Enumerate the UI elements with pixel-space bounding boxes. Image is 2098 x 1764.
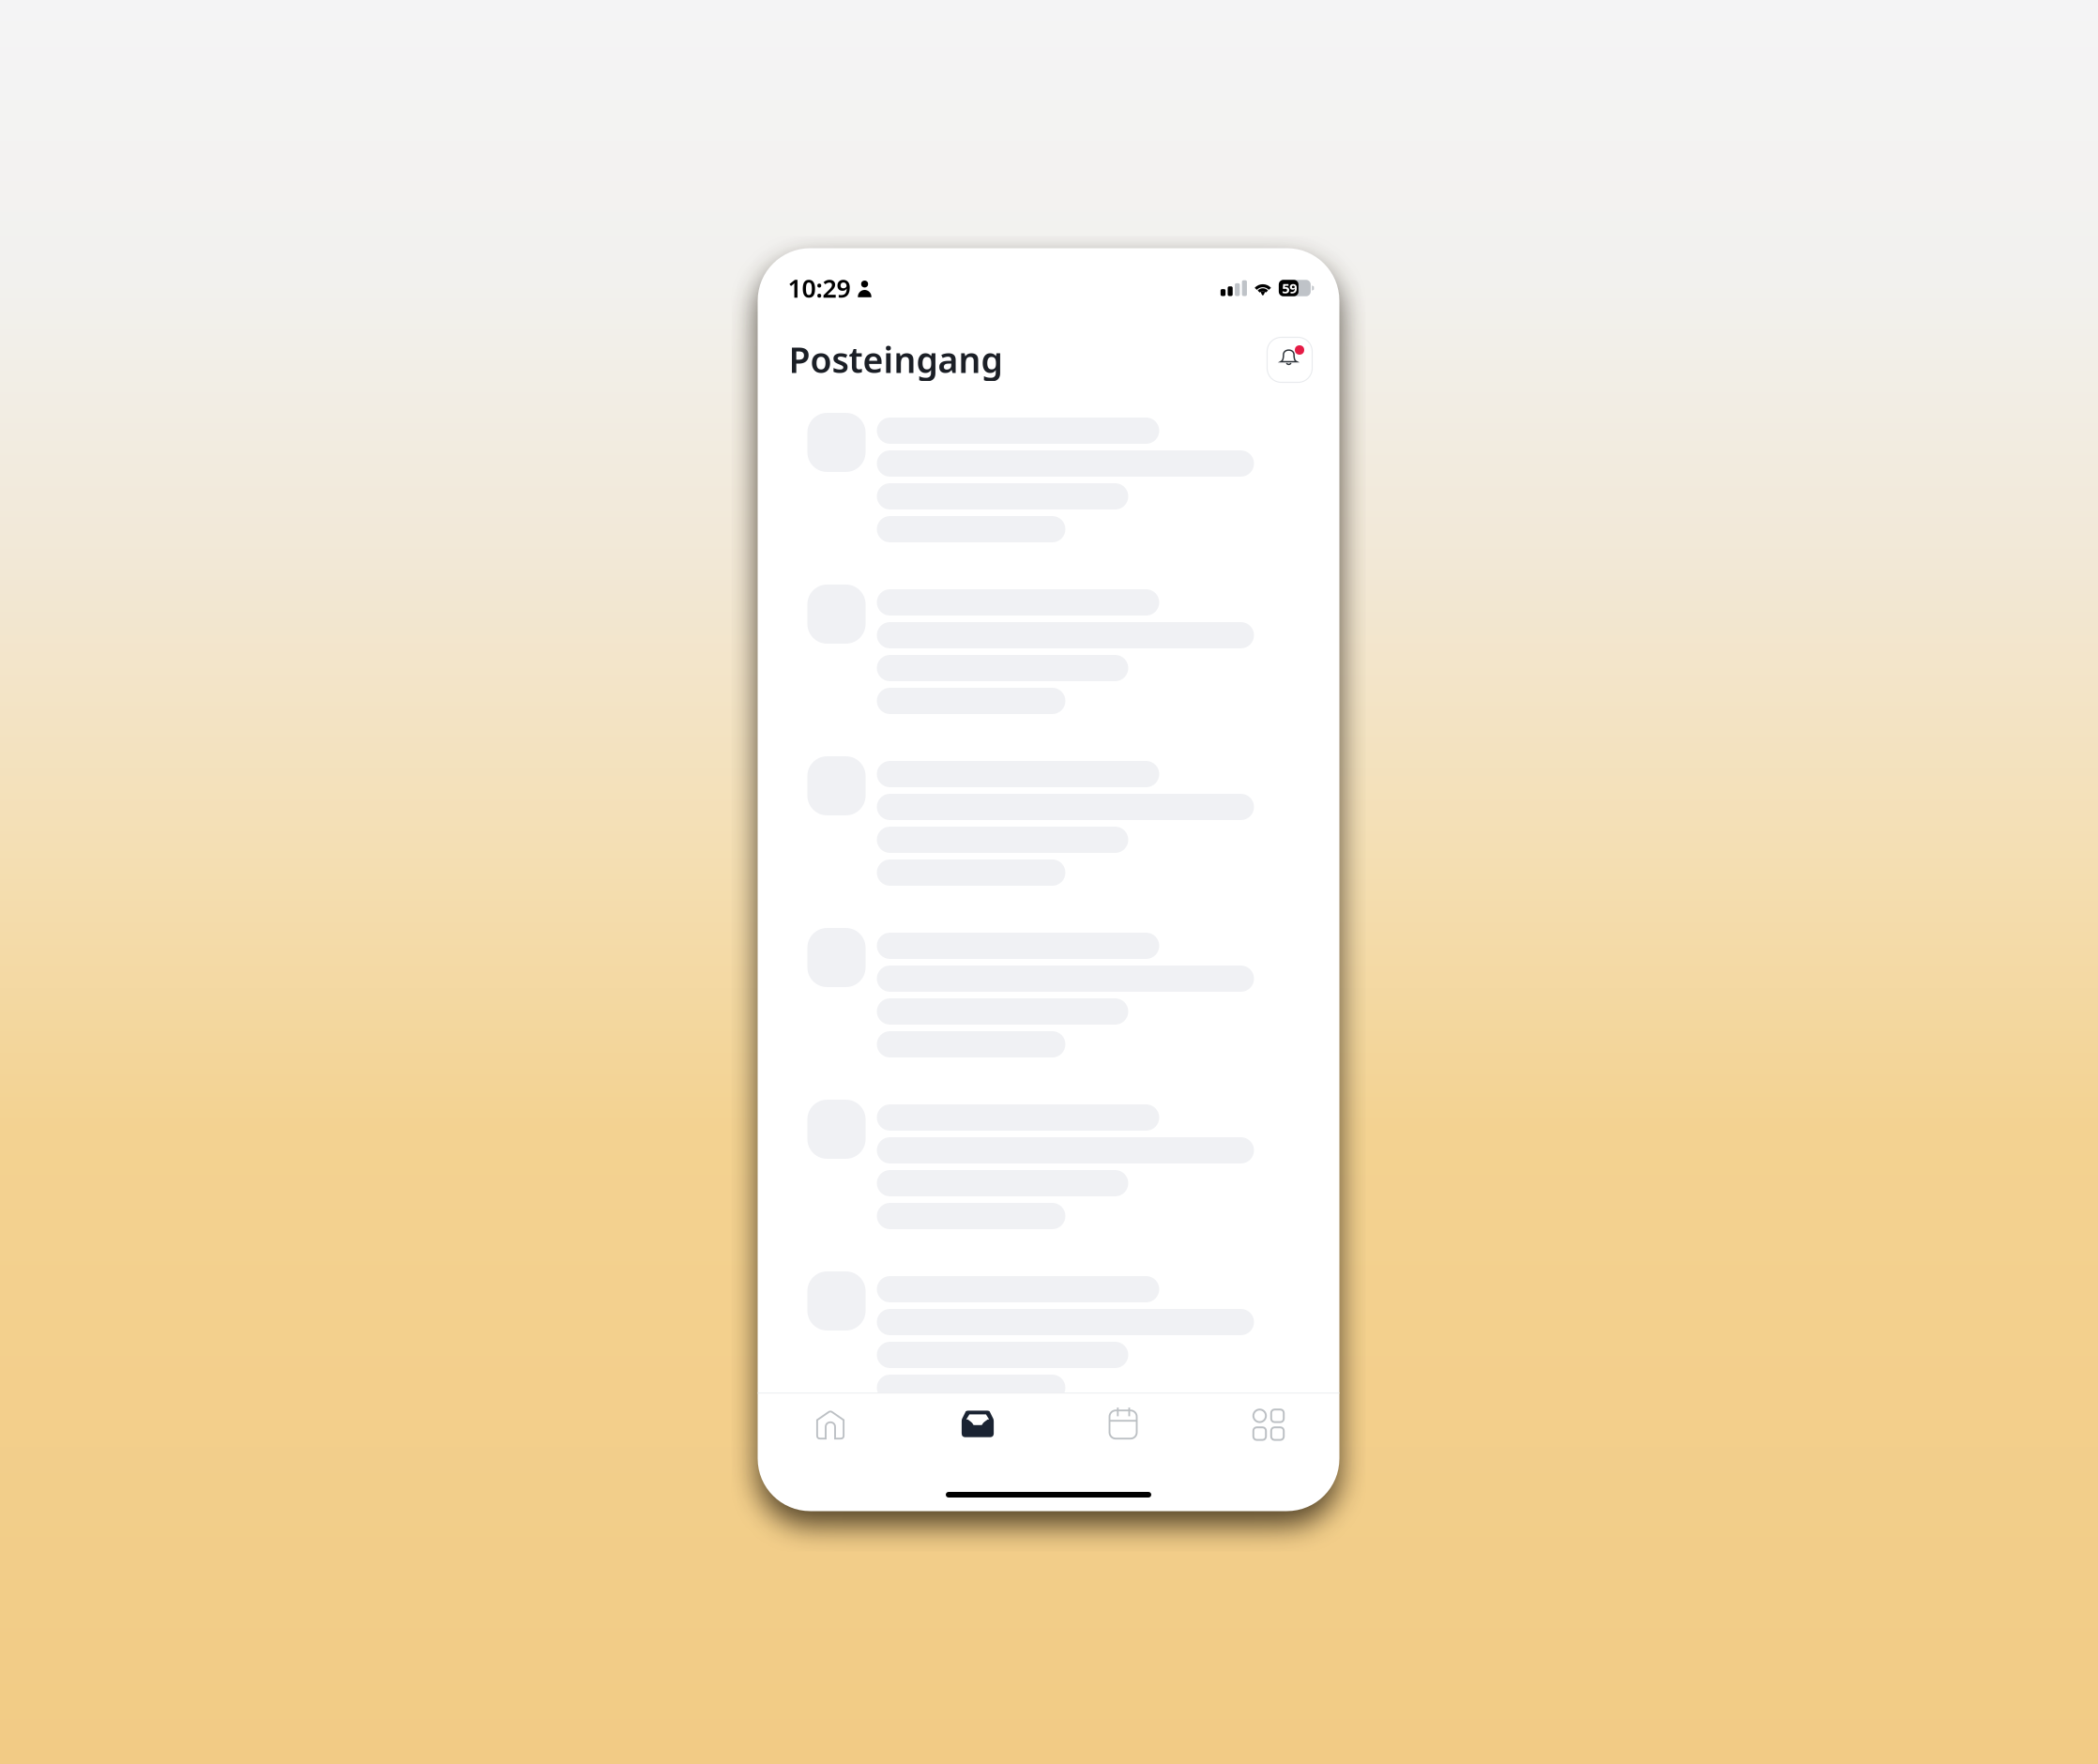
button[interactable]: Inbox bbox=[903, 1410, 1049, 1464]
staticText: Posteingang bbox=[789, 336, 1003, 383]
button[interactable]: Home bbox=[758, 1410, 903, 1464]
staticText: 10:29 bbox=[788, 271, 851, 305]
button[interactable]: Calendar bbox=[1049, 1410, 1194, 1464]
staticText: 59 bbox=[1282, 279, 1297, 297]
button[interactable]: More bbox=[1194, 1410, 1339, 1464]
button[interactable]: Notifications bbox=[1263, 341, 1308, 386]
